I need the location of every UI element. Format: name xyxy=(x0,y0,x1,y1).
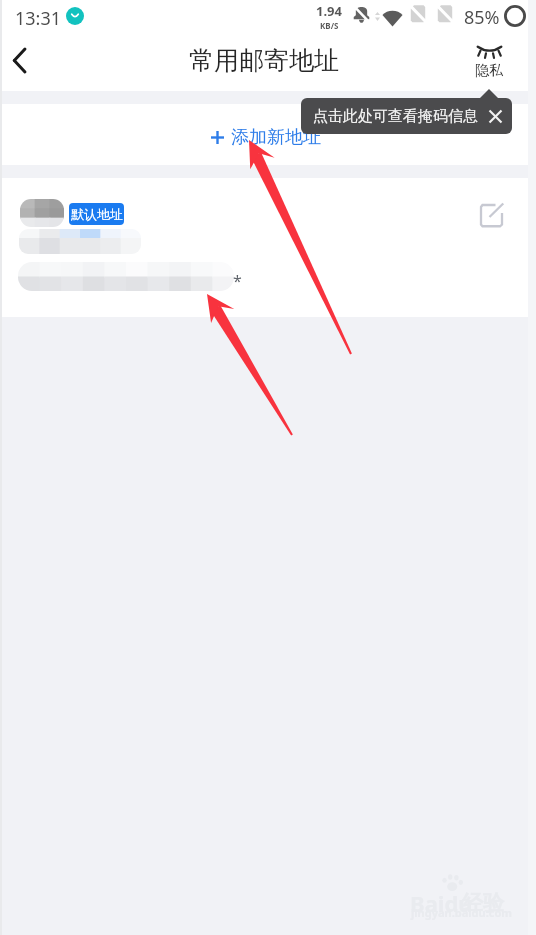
staticText: jingyan.baidu.com xyxy=(411,905,513,920)
staticText: KB/S xyxy=(320,20,339,31)
staticText: 点击此处可查看掩码信息 xyxy=(313,107,478,126)
staticText: Baidu xyxy=(410,888,473,918)
button[interactable]: 默认地址 xyxy=(0,178,536,317)
staticText: 默认地址 xyxy=(71,206,123,222)
button[interactable]: Privacy xyxy=(466,46,512,80)
button[interactable]: Back xyxy=(0,32,40,88)
staticText: 13:31 xyxy=(15,6,62,31)
staticText: 1.94 xyxy=(316,2,342,20)
staticText: 经验 xyxy=(462,890,504,916)
staticText: * xyxy=(233,270,242,292)
button[interactable]: Edit xyxy=(470,194,512,236)
staticText: 常用邮寄地址 xyxy=(189,45,339,76)
staticText: 隐私 xyxy=(475,62,503,80)
button[interactable]: 添加新地址 xyxy=(0,104,536,165)
button[interactable]: Close tip xyxy=(483,98,508,134)
staticText: 85% xyxy=(464,5,500,30)
button[interactable]: 点击此处可查看掩码信息 xyxy=(301,98,512,134)
staticText: 添加新地址 xyxy=(231,126,321,149)
